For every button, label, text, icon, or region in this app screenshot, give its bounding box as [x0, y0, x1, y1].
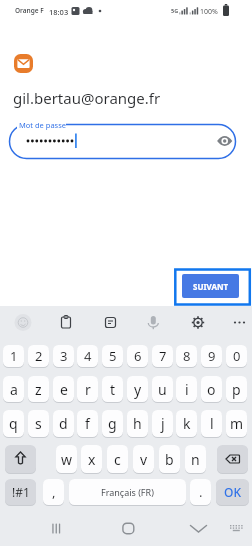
button[interactable]: [11, 310, 35, 334]
button[interactable]: s: [28, 410, 49, 437]
staticText: 3: [60, 347, 68, 365]
button[interactable]: 3: [53, 345, 74, 367]
button[interactable]: 6: [127, 345, 148, 367]
staticText: 2: [35, 347, 43, 365]
button[interactable]: h: [127, 410, 148, 437]
staticText: 5G: [171, 7, 179, 14]
staticText: h: [133, 414, 142, 433]
staticText: f: [85, 414, 90, 433]
staticText: r: [85, 380, 91, 399]
button[interactable]: [186, 310, 210, 334]
button[interactable]: [98, 310, 122, 334]
button[interactable]: [36, 510, 88, 546]
staticText: y: [134, 380, 142, 399]
button[interactable]: !#1: [5, 479, 36, 505]
staticText: 100%: [200, 7, 218, 17]
staticText: p: [232, 380, 241, 399]
button[interactable]: 1: [3, 345, 24, 367]
button[interactable]: [228, 310, 252, 334]
button[interactable]: i: [176, 376, 197, 402]
staticText: c: [114, 450, 121, 469]
button[interactable]: [224, 510, 252, 546]
staticText: ,: [52, 483, 56, 501]
staticText: 0: [233, 347, 241, 365]
button[interactable]: g: [102, 410, 123, 437]
staticText: k: [183, 414, 191, 433]
button[interactable]: o: [201, 376, 222, 402]
button[interactable]: k: [176, 410, 197, 437]
staticText: q: [9, 414, 18, 433]
button[interactable]: y: [127, 376, 148, 402]
button[interactable]: x: [81, 445, 102, 473]
staticText: 1: [10, 347, 18, 365]
button[interactable]: 4: [77, 345, 98, 367]
button[interactable]: n: [185, 445, 206, 473]
button[interactable]: 8: [176, 345, 197, 367]
button[interactable]: [10, 125, 236, 159]
staticText: 8: [183, 347, 191, 365]
button[interactable]: SUIVANT: [182, 274, 239, 298]
button[interactable]: q: [3, 410, 24, 437]
staticText: 9: [208, 347, 216, 365]
staticText: x: [88, 450, 96, 469]
button[interactable]: ,: [43, 479, 64, 505]
button[interactable]: 0: [226, 345, 247, 367]
button[interactable]: d: [53, 410, 74, 437]
staticText: 6: [134, 347, 142, 365]
button[interactable]: 2: [28, 345, 49, 367]
staticText: w: [61, 450, 73, 469]
button[interactable]: u: [152, 376, 173, 402]
button[interactable]: 7: [152, 345, 173, 367]
staticText: t: [110, 380, 116, 399]
button[interactable]: r: [77, 376, 98, 402]
button[interactable]: m: [226, 410, 247, 437]
staticText: a: [10, 380, 18, 399]
staticText: 5: [109, 347, 117, 365]
button[interactable]: [212, 129, 237, 153]
staticText: s: [35, 414, 42, 433]
button[interactable]: z: [28, 376, 49, 402]
staticText: e: [60, 380, 68, 399]
button[interactable]: c: [107, 445, 128, 473]
staticText: o: [207, 380, 216, 399]
button[interactable]: [54, 310, 78, 334]
button[interactable]: [217, 445, 248, 473]
button[interactable]: f: [77, 410, 98, 437]
staticText: !#1: [12, 484, 30, 500]
staticText: z: [35, 380, 42, 399]
staticText: 4: [84, 347, 92, 365]
button[interactable]: [100, 510, 156, 546]
button[interactable]: [141, 310, 165, 334]
staticText: g: [108, 414, 117, 433]
button[interactable]: [170, 510, 222, 546]
staticText: gil.bertau@orange.fr: [13, 88, 161, 108]
button[interactable]: v: [133, 445, 154, 473]
button[interactable]: w: [56, 445, 77, 473]
staticText: Mot de passe: [19, 120, 67, 130]
staticText: u: [158, 380, 167, 399]
button[interactable]: j: [152, 410, 173, 437]
button[interactable]: l: [201, 410, 222, 437]
button[interactable]: OK: [216, 479, 249, 505]
button[interactable]: e: [53, 376, 74, 402]
staticText: 7: [159, 347, 167, 365]
staticText: Orange F: [15, 6, 44, 15]
button[interactable]: p: [226, 376, 247, 402]
staticText: n: [191, 450, 200, 469]
staticText: OK: [224, 484, 241, 500]
button[interactable]: a: [3, 376, 24, 402]
button[interactable]: [5, 445, 36, 473]
staticText: Français (FR): [101, 486, 154, 498]
button[interactable]: .: [190, 479, 211, 505]
staticText: 18:03: [49, 7, 69, 17]
button[interactable]: 9: [201, 345, 222, 367]
button[interactable]: Français (FR): [69, 479, 186, 505]
staticText: v: [140, 450, 148, 469]
staticText: SUIVANT: [193, 281, 229, 292]
staticText: d: [59, 414, 68, 433]
staticText: i: [185, 380, 189, 399]
button[interactable]: t: [102, 376, 123, 402]
staticText: m: [230, 414, 244, 433]
button[interactable]: b: [159, 445, 180, 473]
button[interactable]: 5: [102, 345, 123, 367]
